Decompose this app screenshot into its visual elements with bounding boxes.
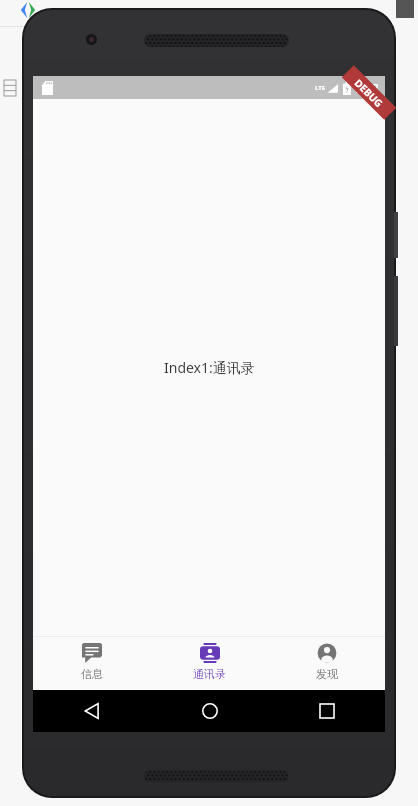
staticText: 信息 [81, 667, 103, 681]
button[interactable]: Recents [268, 690, 385, 732]
staticText: Index1:通讯录 [164, 358, 255, 377]
staticText: 通讯录 [193, 667, 226, 681]
staticText: DEBUG [352, 76, 386, 110]
button[interactable]: 发现 [268, 637, 385, 690]
staticText: 9:28 [355, 80, 379, 96]
button[interactable]: Back [33, 690, 151, 732]
staticText: LTE [315, 84, 326, 92]
staticText: 发现 [316, 667, 338, 681]
button[interactable]: Home [151, 690, 268, 732]
button[interactable]: 信息 [33, 637, 151, 690]
button[interactable]: 通讯录 [151, 637, 268, 690]
